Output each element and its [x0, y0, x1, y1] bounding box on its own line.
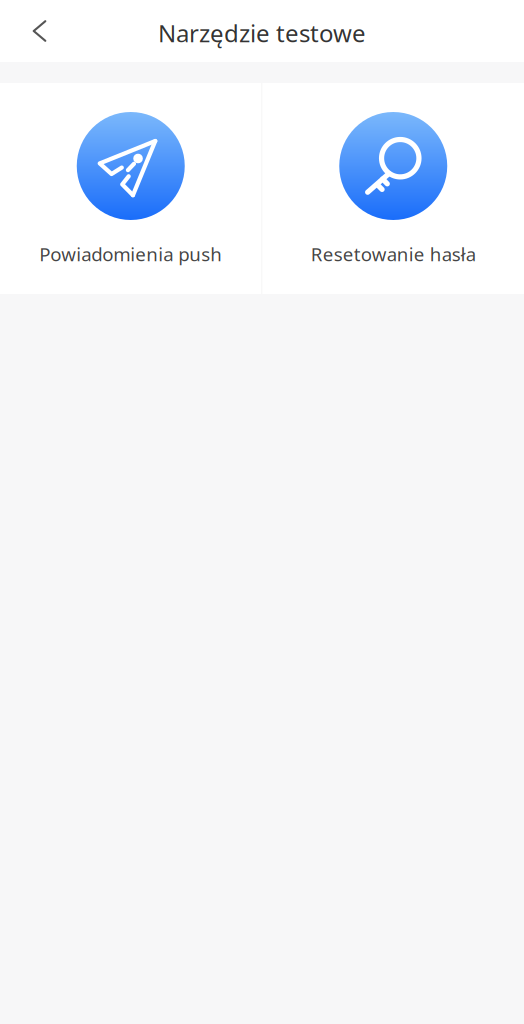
staticText: Resetowanie hasła — [311, 242, 476, 266]
staticText: Narzędzie testowe — [158, 17, 366, 49]
button[interactable]: Powiadomienia push — [0, 83, 261, 294]
staticText: Powiadomienia push — [39, 242, 222, 266]
button[interactable]: Back — [0, 4, 66, 57]
button[interactable]: Resetowanie hasła — [262, 83, 524, 294]
